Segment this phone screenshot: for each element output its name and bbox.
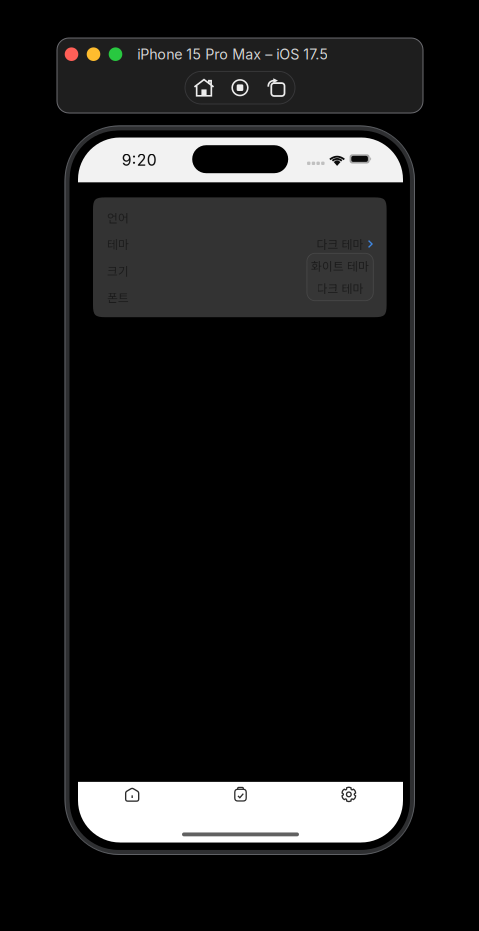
staticText: 다크 테마 bbox=[316, 235, 363, 252]
button[interactable]: Rotate bbox=[258, 71, 294, 104]
staticText: 화이트 테마 bbox=[311, 257, 369, 274]
button[interactable]: 설정 bbox=[295, 777, 403, 811]
button[interactable]: Home bbox=[186, 71, 222, 104]
staticText: 크기 bbox=[107, 262, 129, 279]
button[interactable]: 기록 bbox=[186, 777, 295, 811]
button[interactable]: 다크 테마 bbox=[307, 277, 373, 299]
button[interactable]: Record bbox=[222, 71, 258, 104]
button[interactable]: 폰트 bbox=[93, 284, 387, 310]
staticText: iPhone 15 Pro Max – iOS 17.5 bbox=[137, 46, 328, 63]
button[interactable]: 크기 bbox=[93, 257, 387, 284]
staticText: 폰트 bbox=[107, 289, 129, 306]
staticText: 9:20 bbox=[122, 150, 157, 169]
button[interactable]: 홈 bbox=[78, 777, 186, 811]
button[interactable]: 테마 bbox=[93, 231, 387, 257]
staticText: 테마 bbox=[107, 235, 129, 252]
button[interactable]: 화이트 테마 bbox=[307, 254, 373, 277]
staticText: 언어 bbox=[107, 209, 129, 226]
staticText: 다크 테마 bbox=[317, 280, 364, 297]
